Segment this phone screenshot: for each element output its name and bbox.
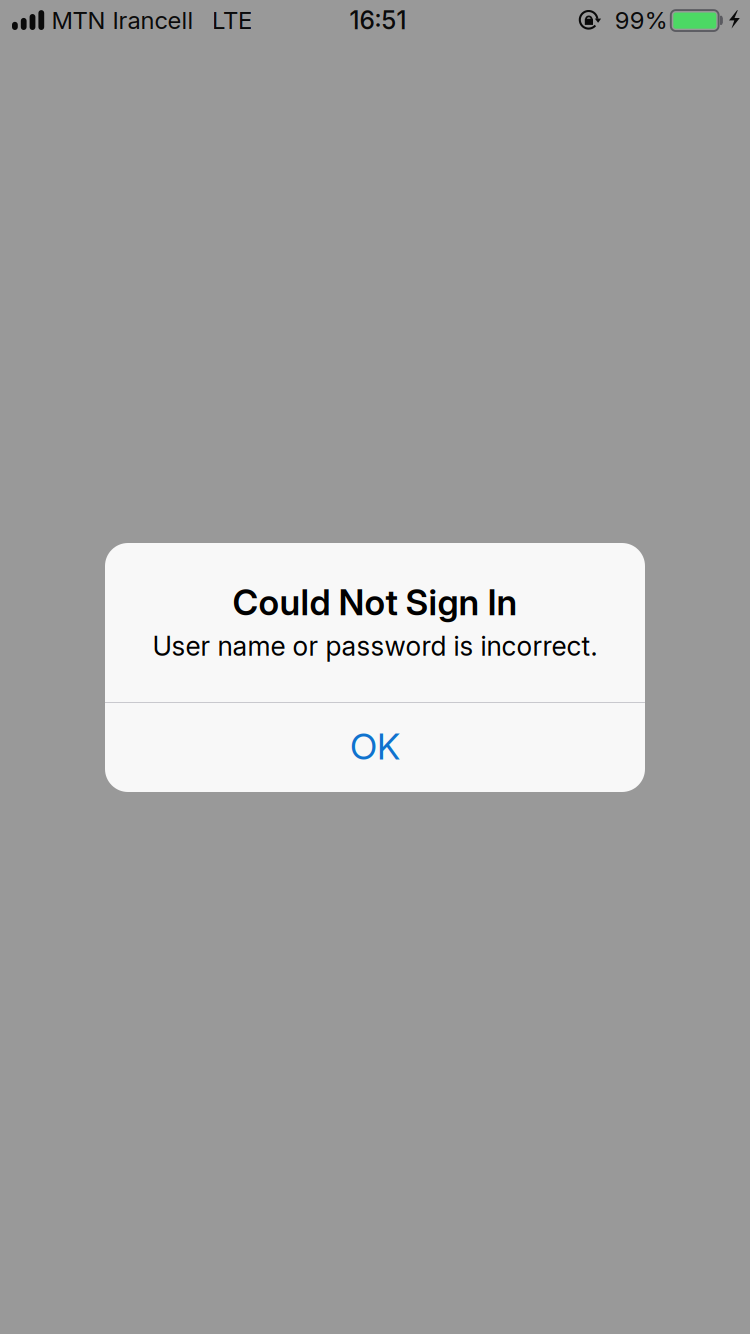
button[interactable]: OK: [105, 703, 645, 792]
staticText: 16:51: [349, 5, 406, 35]
staticText: MTN Irancell: [52, 6, 194, 35]
staticText: 99%: [615, 6, 668, 35]
staticText: User name or password is incorrect.: [152, 630, 597, 662]
staticText: Could Not Sign In: [232, 581, 517, 624]
staticText: LTE: [212, 6, 252, 35]
staticText: OK: [350, 725, 400, 768]
